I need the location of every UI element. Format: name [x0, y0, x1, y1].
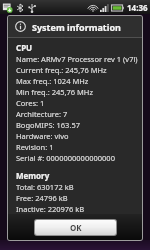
- staticText: Total: 630172 kB: [16, 182, 74, 192]
- staticText: System information: [32, 21, 121, 33]
- staticText: Revision: 1: [16, 142, 54, 152]
- staticText: Name: ARMv7 Processor rev 1 (v7l): [16, 54, 138, 64]
- other: Information: [15, 21, 26, 32]
- staticText: Max freq.: 1024 MHz: [16, 76, 89, 86]
- staticText: Memory: [16, 170, 50, 181]
- staticText: OK: [70, 222, 82, 233]
- staticText: Architecture: 7: [16, 109, 68, 119]
- staticText: Current freq.: 245,76 MHz: [16, 65, 107, 75]
- staticText: 14:36: [127, 2, 148, 13]
- staticText: Hardware: vivo: [16, 131, 69, 141]
- staticText: Min freq.: 245,76 MHz: [16, 87, 93, 97]
- staticText: Cores: 1: [16, 98, 45, 108]
- staticText: Inactive: 220976 kB: [16, 204, 85, 213]
- staticText: CPU: [16, 42, 33, 53]
- staticText: BogoMIPS: 163.57: [16, 120, 80, 130]
- staticText: Free: 24796 kB: [16, 193, 68, 203]
- button[interactable]: OK: [35, 220, 116, 235]
- staticText: Serial #: 0000000000000000: [16, 153, 115, 163]
